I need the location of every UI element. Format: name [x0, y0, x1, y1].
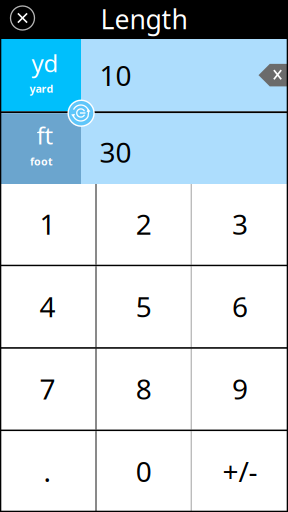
button[interactable]: 2 [97, 184, 191, 265]
staticText: Length [100, 1, 187, 37]
staticText: 1 [40, 205, 56, 242]
button[interactable]: 1 [0, 184, 95, 265]
staticText: 7 [40, 370, 56, 407]
button[interactable]: Delete [258, 64, 288, 86]
staticText: 9 [232, 370, 248, 407]
staticText: 2 [136, 205, 152, 242]
button[interactable]: 4 [0, 266, 95, 347]
staticText: 0 [136, 452, 152, 490]
button[interactable]: Close [3, 0, 41, 37]
button[interactable]: yd [0, 39, 81, 111]
button[interactable]: 5 [97, 266, 191, 347]
staticText: yd [31, 47, 58, 79]
button[interactable]: +/- [192, 431, 288, 512]
button[interactable]: 6 [192, 266, 288, 347]
staticText: 10 [99, 56, 131, 94]
button[interactable]: ft [0, 113, 81, 184]
staticText: +/- [222, 452, 257, 490]
staticText: 30 [99, 133, 131, 170]
button[interactable]: 7 [0, 349, 95, 430]
button[interactable]: . [0, 431, 95, 512]
button[interactable]: 0 [97, 431, 191, 512]
staticText: 6 [232, 288, 248, 325]
staticText: 3 [232, 205, 248, 242]
staticText: 5 [136, 288, 152, 325]
staticText: 8 [136, 370, 152, 407]
staticText: ft [36, 119, 53, 151]
staticText: 4 [40, 288, 56, 325]
staticText: yard [29, 81, 53, 96]
staticText: . [44, 452, 52, 490]
button[interactable]: 3 [192, 184, 288, 265]
button[interactable]: 9 [192, 349, 288, 430]
staticText: foot [30, 154, 53, 168]
button[interactable]: Swap units [67, 99, 95, 127]
button[interactable]: 8 [97, 349, 191, 430]
